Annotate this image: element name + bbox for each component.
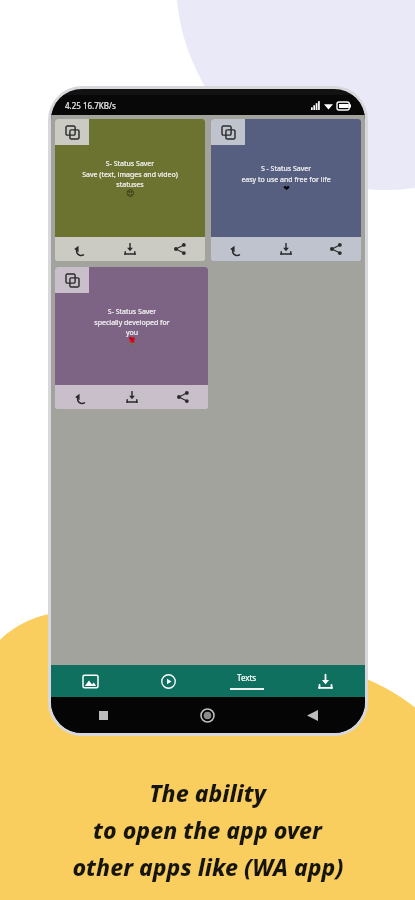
button[interactable]: Copy [211, 119, 361, 261]
staticText: S- Status Saver Save (text, images and v… [82, 159, 178, 189]
staticText: 😍 [126, 189, 135, 198]
button[interactable]: Recents [51, 697, 155, 733]
staticText: 4.25 16.7KB/s [65, 100, 116, 111]
button[interactable]: Reply [211, 237, 261, 261]
button[interactable]: Back [260, 697, 365, 733]
staticText: Texts [237, 672, 257, 683]
button[interactable]: Images [51, 665, 129, 697]
button[interactable]: Home [155, 697, 260, 733]
staticText: other apps like (WA app) [72, 851, 344, 882]
button[interactable]: Download [106, 385, 157, 409]
button[interactable]: Reply [55, 237, 105, 261]
button[interactable]: Download [261, 237, 311, 261]
button[interactable]: Copy [55, 119, 89, 145]
button[interactable]: Download [105, 237, 155, 261]
button[interactable]: Share [155, 237, 205, 261]
button[interactable]: Copy [55, 119, 205, 261]
staticText: ❤ [283, 184, 290, 193]
staticText: S- Status Saver specially developed for … [94, 307, 170, 337]
button[interactable]: Copy [55, 267, 208, 409]
staticText: The ability [149, 777, 266, 808]
button[interactable]: Share [311, 237, 361, 261]
staticText: S - Status Saver easy to use and free fo… [241, 164, 331, 184]
button[interactable]: Share [157, 385, 208, 409]
staticText: to open the app over [93, 814, 322, 845]
staticText: 🌹 [127, 337, 137, 346]
button[interactable]: Texts [207, 665, 286, 697]
button[interactable]: Copy [55, 267, 89, 293]
button[interactable]: Copy [211, 119, 245, 145]
button[interactable]: Videos [129, 665, 207, 697]
button[interactable]: Saved [286, 665, 365, 697]
button[interactable]: Reply [55, 385, 106, 409]
